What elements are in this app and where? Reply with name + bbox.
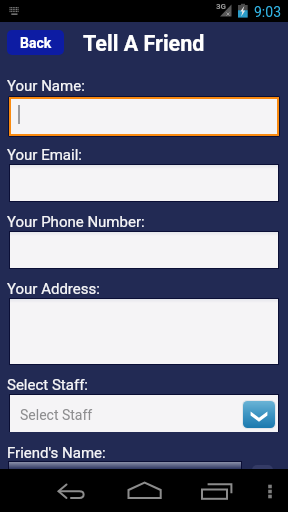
button[interactable] (10, 165, 278, 201)
button[interactable]: More options (258, 469, 284, 512)
button[interactable]: Back (7, 30, 64, 55)
staticText: Select Staff: (7, 376, 88, 394)
button[interactable]: Select Staff (10, 395, 278, 432)
staticText: Your Email: (7, 146, 82, 164)
staticText: 9:03 (254, 4, 281, 20)
staticText: 3G (216, 2, 227, 11)
button[interactable]: Pick contact (252, 465, 273, 471)
button[interactable]: Recent apps (196, 469, 238, 512)
staticText: Select Staff (20, 407, 93, 423)
button[interactable]: Open staff dropdown (243, 401, 275, 428)
button[interactable] (10, 232, 278, 268)
button[interactable] (9, 462, 241, 469)
staticText: Back (20, 35, 52, 51)
staticText: Your Address: (7, 280, 100, 298)
button[interactable]: Back (50, 469, 92, 512)
button[interactable] (11, 99, 277, 134)
staticText: Your Phone Number: (7, 213, 145, 231)
staticText: Tell A Friend (83, 31, 205, 56)
staticText: Friend's Name: (7, 444, 106, 462)
button[interactable]: Home (124, 469, 166, 512)
staticText: Your Name: (7, 77, 85, 95)
